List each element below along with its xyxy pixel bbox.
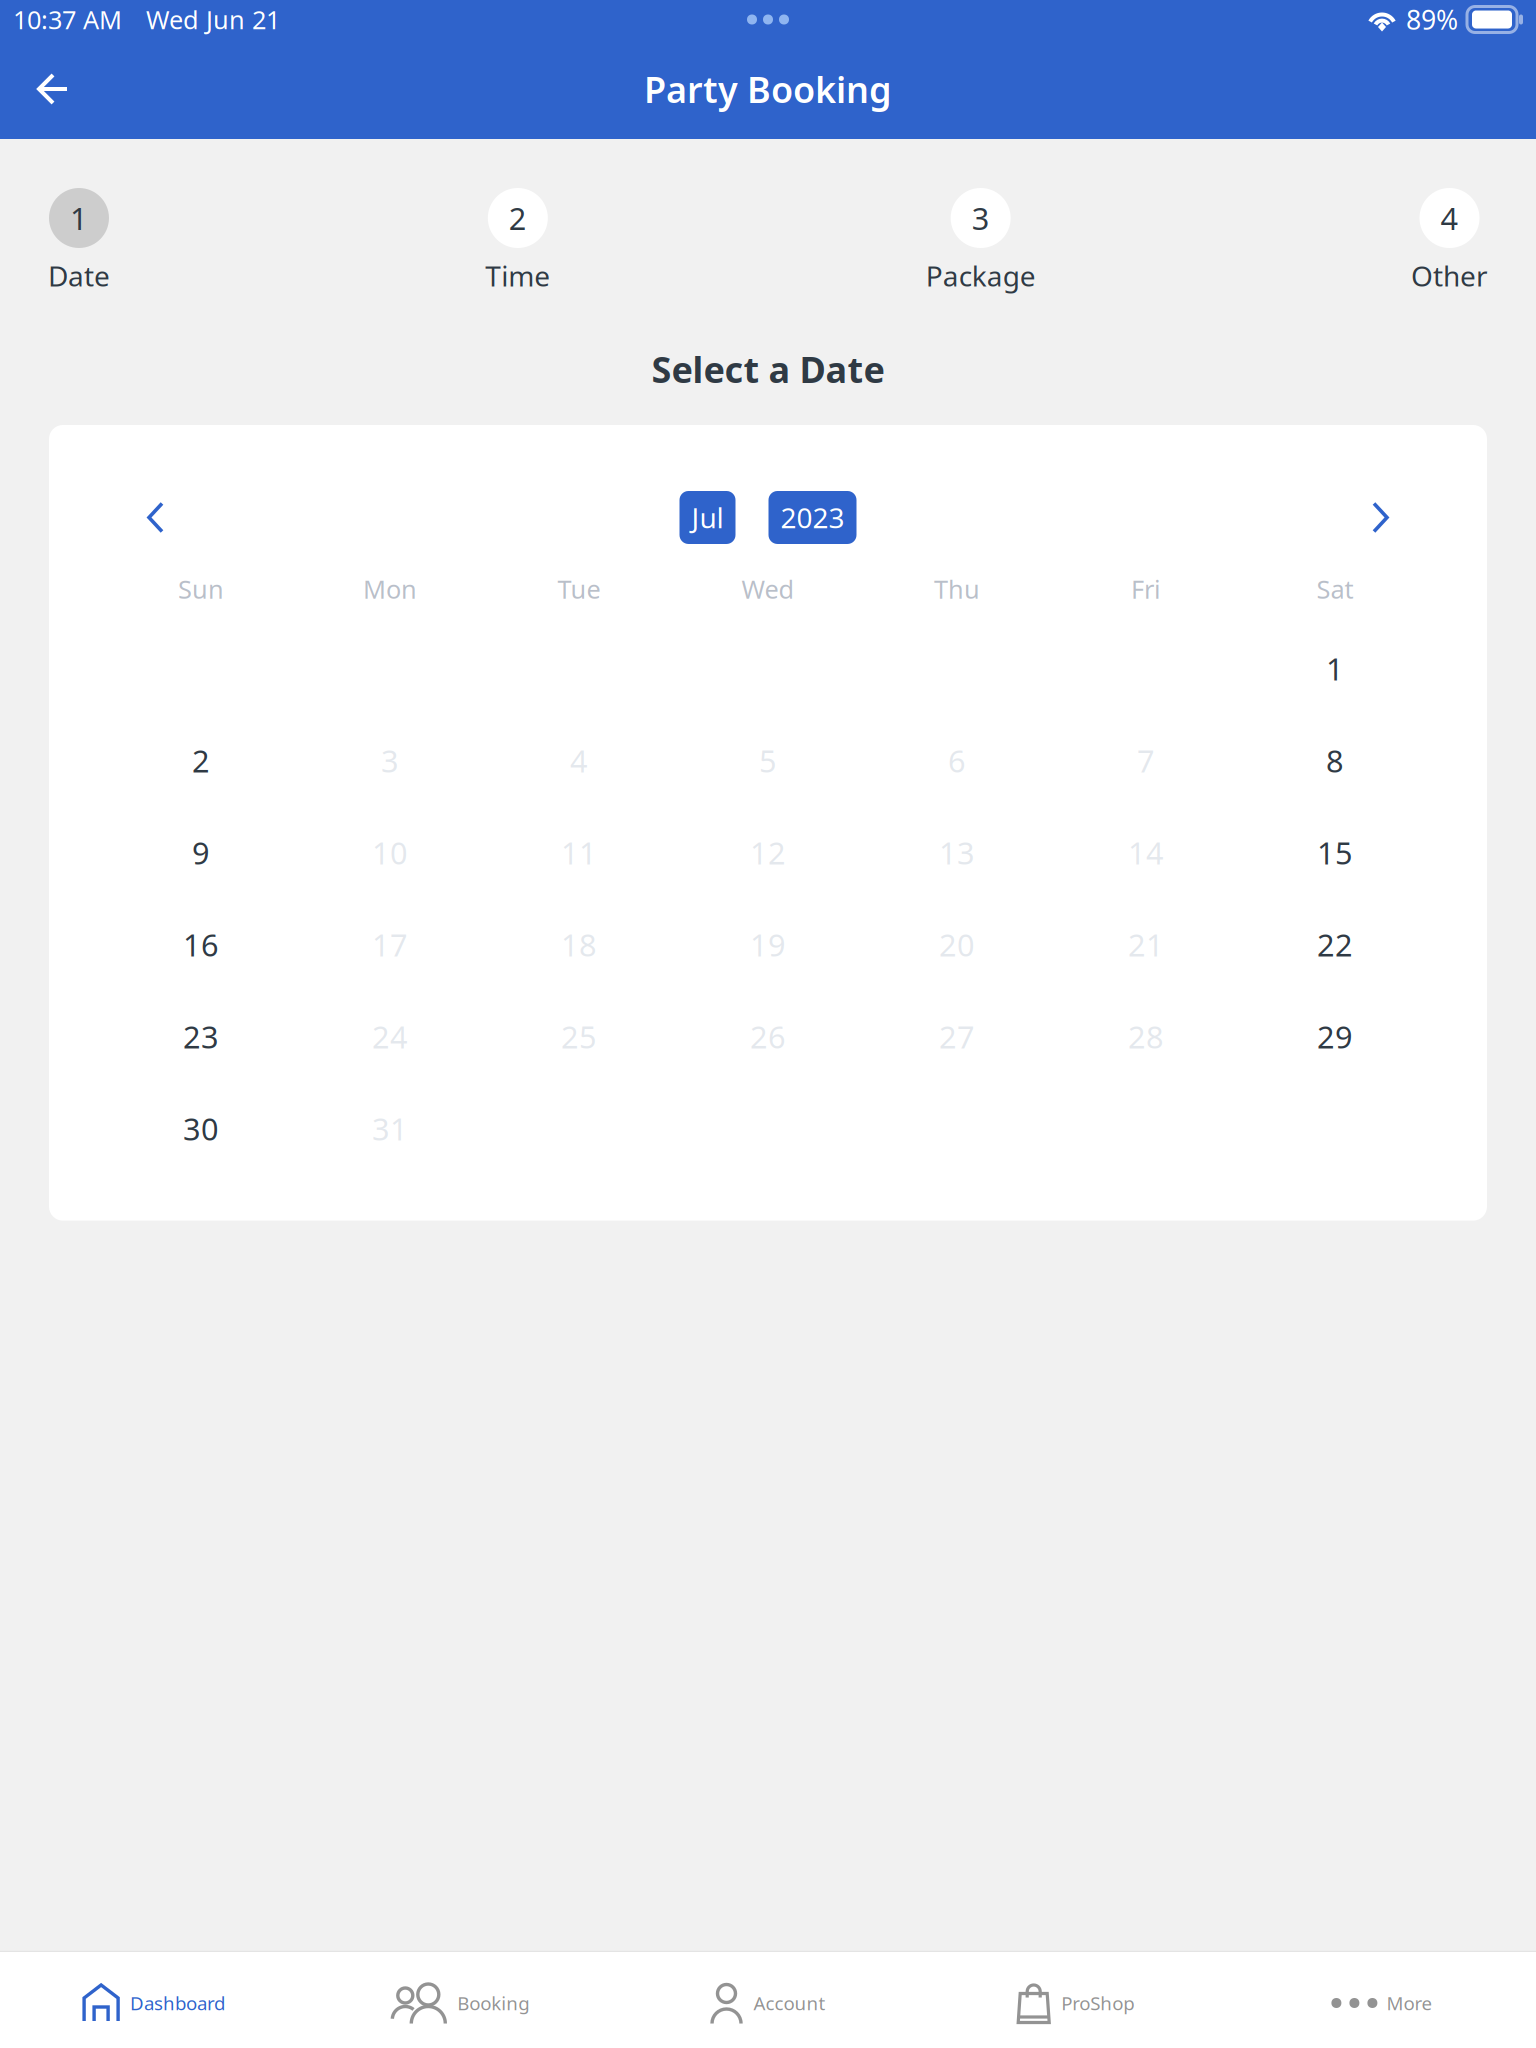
staticText: 17 bbox=[372, 924, 408, 965]
button[interactable]: 16 bbox=[106, 899, 295, 991]
button[interactable]: More bbox=[1229, 1964, 1536, 2042]
button[interactable]: Previous month bbox=[146, 500, 165, 534]
button[interactable]: Back bbox=[37, 73, 69, 105]
button[interactable]: 4 bbox=[1411, 188, 1488, 294]
button[interactable]: Dashboard bbox=[0, 1964, 307, 2042]
staticText: Package bbox=[926, 257, 1036, 294]
staticText: 14 bbox=[1128, 832, 1164, 873]
button[interactable]: 2 bbox=[106, 715, 295, 807]
button[interactable]: 28 bbox=[1051, 991, 1240, 1083]
staticText: 18 bbox=[561, 924, 597, 965]
button[interactable]: Booking bbox=[307, 1964, 614, 2042]
button[interactable]: Jul bbox=[679, 491, 735, 544]
staticText: 2 bbox=[509, 198, 527, 238]
staticText: Sun bbox=[178, 572, 224, 606]
staticText: 23 bbox=[183, 1016, 219, 1057]
staticText: Jul bbox=[691, 499, 723, 536]
staticText: Dashboard bbox=[130, 1991, 225, 2015]
button[interactable]: 1 bbox=[48, 188, 110, 294]
staticText: Select a Date bbox=[651, 345, 884, 393]
staticText: 12 bbox=[750, 832, 786, 873]
staticText: 15 bbox=[1317, 832, 1353, 873]
staticText: 11 bbox=[561, 832, 597, 873]
staticText: Wed bbox=[741, 572, 794, 606]
staticText: 3 bbox=[381, 740, 399, 781]
staticText: 10:37 AM bbox=[13, 3, 122, 36]
button[interactable]: ProShop bbox=[922, 1964, 1229, 2042]
staticText: Mon bbox=[363, 572, 417, 606]
staticText: 5 bbox=[759, 740, 777, 781]
staticText: Account bbox=[753, 1991, 825, 2015]
staticText: 2 bbox=[192, 740, 210, 781]
button[interactable]: 15 bbox=[1240, 807, 1429, 899]
staticText: 13 bbox=[939, 832, 975, 873]
staticText: More bbox=[1386, 1991, 1432, 2015]
button[interactable]: Next month bbox=[1371, 500, 1390, 534]
staticText: Thu bbox=[934, 572, 980, 606]
button[interactable]: 30 bbox=[106, 1083, 295, 1175]
staticText: 1 bbox=[1326, 648, 1344, 689]
staticText: Tue bbox=[557, 572, 600, 606]
button[interactable]: 1 bbox=[1240, 623, 1429, 715]
button[interactable]: 9 bbox=[106, 807, 295, 899]
staticText: Sat bbox=[1316, 572, 1353, 606]
button[interactable]: 2023 bbox=[768, 491, 856, 544]
staticText: 29 bbox=[1317, 1016, 1353, 1057]
staticText: 7 bbox=[1137, 740, 1155, 781]
staticText: 26 bbox=[750, 1016, 786, 1057]
staticText: 19 bbox=[750, 924, 786, 965]
button[interactable]: Account bbox=[614, 1964, 922, 2042]
button[interactable]: 3 bbox=[926, 188, 1036, 294]
button[interactable]: 29 bbox=[1240, 991, 1429, 1083]
button[interactable]: 2 bbox=[485, 188, 550, 294]
staticText: 2023 bbox=[780, 499, 844, 536]
button[interactable]: 23 bbox=[106, 991, 295, 1083]
staticText: 21 bbox=[1128, 924, 1164, 965]
button[interactable]: 22 bbox=[1240, 899, 1429, 991]
staticText: 30 bbox=[183, 1108, 219, 1149]
button[interactable]: 8 bbox=[1240, 715, 1429, 807]
staticText: 22 bbox=[1317, 924, 1353, 965]
staticText: 9 bbox=[192, 832, 210, 873]
staticText: Booking bbox=[457, 1991, 529, 2015]
